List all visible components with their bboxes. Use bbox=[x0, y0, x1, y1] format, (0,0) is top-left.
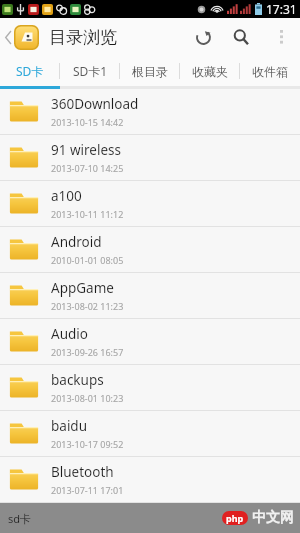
staticText: SD卡 bbox=[16, 63, 44, 79]
staticText: 2013-10-17 09:52 bbox=[51, 438, 124, 450]
button[interactable]: 91 wireless bbox=[0, 135, 300, 181]
button[interactable]: Search bbox=[224, 20, 258, 54]
staticText: baidu bbox=[51, 417, 88, 435]
button[interactable]: Audio bbox=[0, 319, 300, 365]
button[interactable]: backups bbox=[0, 365, 300, 411]
button[interactable]: 360Download bbox=[0, 89, 300, 135]
button[interactable]: Refresh bbox=[186, 20, 220, 54]
button[interactable]: SD卡 bbox=[0, 56, 60, 86]
staticText: 目录浏览 bbox=[49, 27, 117, 48]
button[interactable]: 根目录 bbox=[120, 56, 180, 86]
staticText: 91 wireless bbox=[51, 141, 121, 159]
staticText: Audio bbox=[51, 325, 88, 343]
button[interactable]: 收件箱 bbox=[240, 56, 300, 86]
button[interactable]: Bluetooth bbox=[0, 457, 300, 503]
staticText: 2013-08-02 11:23 bbox=[51, 300, 124, 312]
staticText: 根目录 bbox=[132, 64, 168, 79]
button[interactable]: Android bbox=[0, 227, 300, 273]
staticText: 收件箱 bbox=[252, 64, 288, 79]
button[interactable]: More options bbox=[268, 24, 294, 50]
staticText: 2013-07-11 17:01 bbox=[51, 484, 124, 496]
button[interactable]: 收藏夹 bbox=[180, 56, 240, 86]
staticText: Android bbox=[51, 233, 102, 251]
staticText: 360Download bbox=[51, 95, 139, 113]
staticText: 2013-10-11 11:12 bbox=[51, 208, 124, 220]
staticText: 17:31 bbox=[266, 1, 297, 17]
staticText: 收藏夹 bbox=[192, 64, 228, 79]
staticText: 2013-07-10 14:25 bbox=[51, 162, 124, 174]
staticText: SD卡1 bbox=[73, 63, 108, 79]
button[interactable]: a100 bbox=[0, 181, 300, 227]
button[interactable]: Up bbox=[3, 25, 43, 50]
staticText: 2013-08-01 10:23 bbox=[51, 392, 124, 404]
button[interactable]: SD卡1 bbox=[60, 56, 120, 86]
staticText: 2010-01-01 08:05 bbox=[51, 254, 124, 266]
staticText: sd卡 bbox=[8, 511, 32, 526]
staticText: a100 bbox=[51, 187, 82, 205]
staticText: 2013-09-26 16:57 bbox=[51, 346, 124, 358]
staticText: Bluetooth bbox=[51, 463, 114, 481]
staticText: 中文网 bbox=[252, 509, 294, 527]
staticText: backups bbox=[51, 371, 104, 389]
staticText: AppGame bbox=[51, 279, 114, 297]
button[interactable]: AppGame bbox=[0, 273, 300, 319]
staticText: php bbox=[226, 512, 244, 524]
button[interactable]: baidu bbox=[0, 411, 300, 457]
staticText: 2013-10-15 14:42 bbox=[51, 116, 124, 128]
